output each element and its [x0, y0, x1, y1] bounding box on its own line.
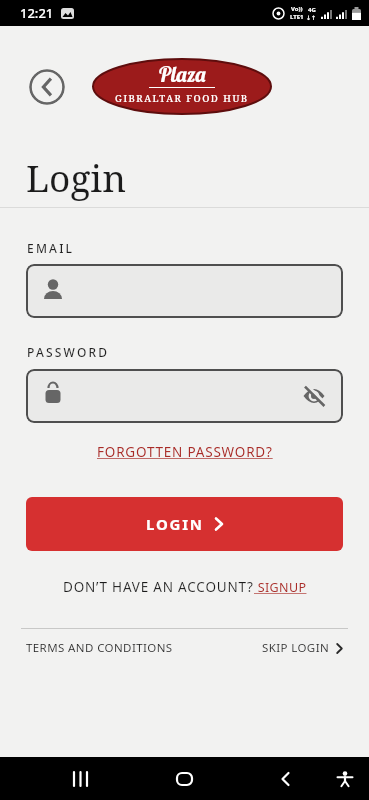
button[interactable] — [63, 757, 99, 800]
button[interactable]: TERMS AND CONDITIONS — [26, 640, 173, 656]
button[interactable] — [166, 757, 202, 800]
staticText: Vo)) — [291, 5, 303, 13]
staticText: Login — [26, 152, 127, 202]
button[interactable]: LOGIN — [26, 497, 343, 551]
staticText: Plaza — [158, 61, 207, 87]
staticText: PASSWORD — [27, 344, 110, 360]
button[interactable] — [26, 369, 343, 423]
button[interactable] — [26, 264, 343, 318]
staticText: EMAIL — [27, 240, 75, 256]
staticText: GIBRALTAR FOOD HUB — [115, 92, 249, 105]
button[interactable]: SIGNUP — [254, 579, 307, 596]
staticText: 4G — [308, 6, 316, 14]
staticText: ↓↑ — [306, 14, 317, 21]
button[interactable]: SKIP LOGIN — [262, 640, 343, 656]
button[interactable] — [267, 757, 303, 800]
button[interactable] — [29, 69, 65, 105]
staticText: LTE1 — [290, 13, 304, 21]
button[interactable] — [291, 369, 343, 423]
button[interactable] — [327, 757, 363, 800]
staticText: 12:21 — [20, 4, 54, 22]
staticText: DON’T HAVE AN ACCOUNT? — [63, 578, 254, 596]
button[interactable]: FORGOTTEN PASSWORD? — [97, 443, 273, 461]
staticText: LOGIN — [146, 514, 204, 534]
staticText: SKIP LOGIN — [262, 640, 330, 656]
